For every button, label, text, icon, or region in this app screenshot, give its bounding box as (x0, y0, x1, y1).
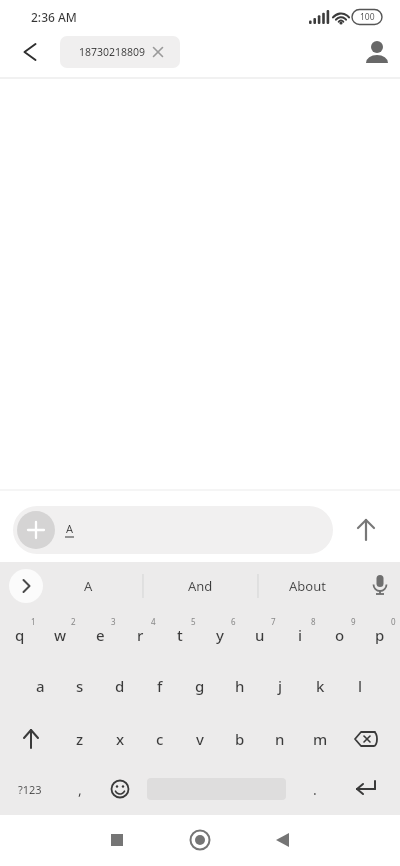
staticText: About (289, 577, 326, 595)
button[interactable]: a (20, 663, 60, 709)
staticText: , (78, 780, 82, 799)
button[interactable]: y (200, 612, 240, 658)
staticText: h (235, 676, 245, 696)
staticText: 18730218809 (79, 45, 146, 59)
staticText: 3 (111, 616, 116, 627)
button[interactable] (13, 506, 333, 554)
staticText: 2:36 AM (31, 9, 77, 25)
staticText: n (275, 729, 285, 749)
staticText: z (76, 729, 84, 749)
button[interactable] (93, 816, 141, 864)
staticText: m (313, 729, 328, 749)
button[interactable]: i (280, 612, 320, 658)
staticText: t (177, 625, 183, 645)
button[interactable]: About (267, 566, 347, 606)
button[interactable] (176, 816, 224, 864)
button[interactable]: z (60, 716, 100, 762)
button[interactable]: r (120, 612, 160, 658)
staticText: e (96, 625, 105, 645)
button[interactable]: . (297, 766, 333, 812)
staticText: k (316, 676, 325, 696)
button[interactable]: A (58, 566, 118, 606)
button[interactable] (339, 766, 393, 812)
staticText: 9 (351, 616, 356, 627)
staticText: And (188, 577, 213, 595)
button[interactable]: c (140, 716, 180, 762)
button[interactable]: 18730218809 (60, 36, 180, 68)
staticText: j (278, 676, 283, 696)
button[interactable]: n (260, 716, 300, 762)
button[interactable]: l (340, 663, 380, 709)
staticText: v (196, 729, 204, 749)
staticText: 4 (151, 616, 156, 627)
staticText: l (358, 676, 363, 696)
staticText: 1 (31, 616, 36, 627)
button[interactable] (259, 816, 307, 864)
button[interactable]: p (360, 612, 400, 658)
staticText: 8 (311, 616, 316, 627)
button[interactable]: x (100, 716, 140, 762)
button[interactable] (17, 511, 55, 549)
staticText: b (235, 729, 245, 749)
button[interactable] (346, 510, 386, 550)
staticText: 5 (191, 616, 196, 627)
button[interactable] (362, 566, 398, 606)
button[interactable]: o (320, 612, 360, 658)
button[interactable]: v (180, 716, 220, 762)
staticText: 2 (71, 616, 76, 627)
staticText: . (313, 780, 317, 799)
button[interactable]: k (300, 663, 340, 709)
button[interactable]: h (220, 663, 260, 709)
button[interactable]: m (300, 716, 340, 762)
staticText: x (116, 729, 125, 749)
button[interactable]: q (0, 612, 40, 658)
button[interactable]: e (80, 612, 120, 658)
staticText: o (335, 625, 345, 645)
staticText: d (115, 676, 125, 696)
button[interactable]: u (240, 612, 280, 658)
button[interactable] (4, 716, 58, 762)
staticText: g (195, 676, 205, 696)
button[interactable]: d (100, 663, 140, 709)
button[interactable]: j (260, 663, 300, 709)
button[interactable]: , (62, 766, 98, 812)
staticText: 7 (271, 616, 276, 627)
staticText: A (66, 521, 74, 536)
button[interactable] (146, 766, 286, 812)
button[interactable]: g (180, 663, 220, 709)
staticText: 0 (391, 616, 396, 627)
staticText: w (54, 625, 67, 645)
staticText: r (137, 625, 144, 645)
button[interactable] (102, 766, 138, 812)
staticText: ?123 (18, 782, 42, 797)
button[interactable]: b (220, 716, 260, 762)
button[interactable] (12, 34, 48, 70)
button[interactable] (9, 569, 43, 603)
button[interactable]: t (160, 612, 200, 658)
button[interactable] (339, 716, 393, 762)
staticText: A (84, 577, 93, 595)
button[interactable]: And (160, 566, 240, 606)
staticText: a (36, 676, 45, 696)
button[interactable]: s (60, 663, 100, 709)
button[interactable]: ?123 (3, 766, 57, 812)
staticText: u (255, 625, 265, 645)
button[interactable]: w (40, 612, 80, 658)
staticText: p (375, 625, 385, 645)
button[interactable] (359, 35, 395, 71)
staticText: q (15, 625, 25, 645)
staticText: c (156, 729, 164, 749)
staticText: s (76, 676, 84, 696)
staticText: y (216, 625, 224, 645)
staticText: 100 (360, 11, 375, 23)
staticText: 6 (231, 616, 236, 627)
staticText: i (298, 625, 303, 645)
staticText: f (157, 676, 163, 696)
button[interactable]: f (140, 663, 180, 709)
